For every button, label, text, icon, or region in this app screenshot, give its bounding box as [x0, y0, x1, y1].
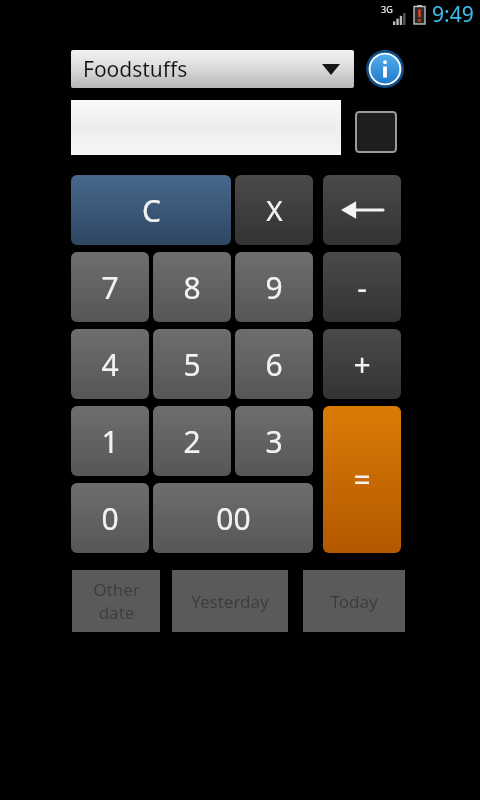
- button[interactable]: Backspace: [323, 175, 401, 245]
- button[interactable]: Foodstuffs: [71, 50, 354, 88]
- button[interactable]: 1: [71, 406, 149, 476]
- staticText: 0: [101, 498, 119, 539]
- button[interactable]: 6: [235, 329, 313, 399]
- button[interactable]: Info: [366, 50, 404, 88]
- staticText: 9:49: [432, 0, 474, 28]
- button[interactable]: 00: [153, 483, 313, 553]
- button[interactable]: 0: [71, 483, 149, 553]
- button[interactable]: Yesterday: [172, 570, 288, 632]
- button[interactable]: 5: [153, 329, 231, 399]
- button[interactable]: 2: [153, 406, 231, 476]
- staticText: =: [353, 459, 371, 500]
- button[interactable]: -: [323, 252, 401, 322]
- staticText: C: [142, 190, 161, 231]
- button[interactable]: 9: [235, 252, 313, 322]
- button[interactable]: Today: [303, 570, 405, 632]
- staticText: 6: [265, 344, 283, 385]
- button[interactable]: =: [323, 406, 401, 553]
- staticText: 3: [265, 421, 283, 462]
- staticText: Today: [330, 590, 378, 613]
- button[interactable]: X: [235, 175, 313, 245]
- button[interactable]: 3: [235, 406, 313, 476]
- button[interactable]: Checkbox: [355, 111, 397, 153]
- staticText: 4: [101, 344, 119, 385]
- staticText: 7: [101, 267, 119, 308]
- button[interactable]: 7: [71, 252, 149, 322]
- button[interactable]: 8: [153, 252, 231, 322]
- staticText: +: [353, 344, 371, 385]
- staticText: Yesterday: [191, 590, 269, 613]
- staticText: 8: [183, 267, 201, 308]
- staticText: 9: [265, 267, 283, 308]
- button[interactable]: Other date: [72, 570, 160, 632]
- staticText: 5: [183, 344, 201, 385]
- button[interactable]: [71, 100, 341, 155]
- staticText: 2: [183, 421, 201, 462]
- staticText: 1: [101, 421, 119, 462]
- staticText: 00: [216, 498, 251, 539]
- button[interactable]: C: [71, 175, 231, 245]
- button[interactable]: 4: [71, 329, 149, 399]
- staticText: 3G: [381, 3, 393, 15]
- staticText: -: [357, 267, 367, 308]
- staticText: X: [266, 191, 283, 229]
- staticText: Other date: [93, 578, 140, 624]
- staticText: Foodstuffs: [83, 55, 188, 84]
- button[interactable]: +: [323, 329, 401, 399]
